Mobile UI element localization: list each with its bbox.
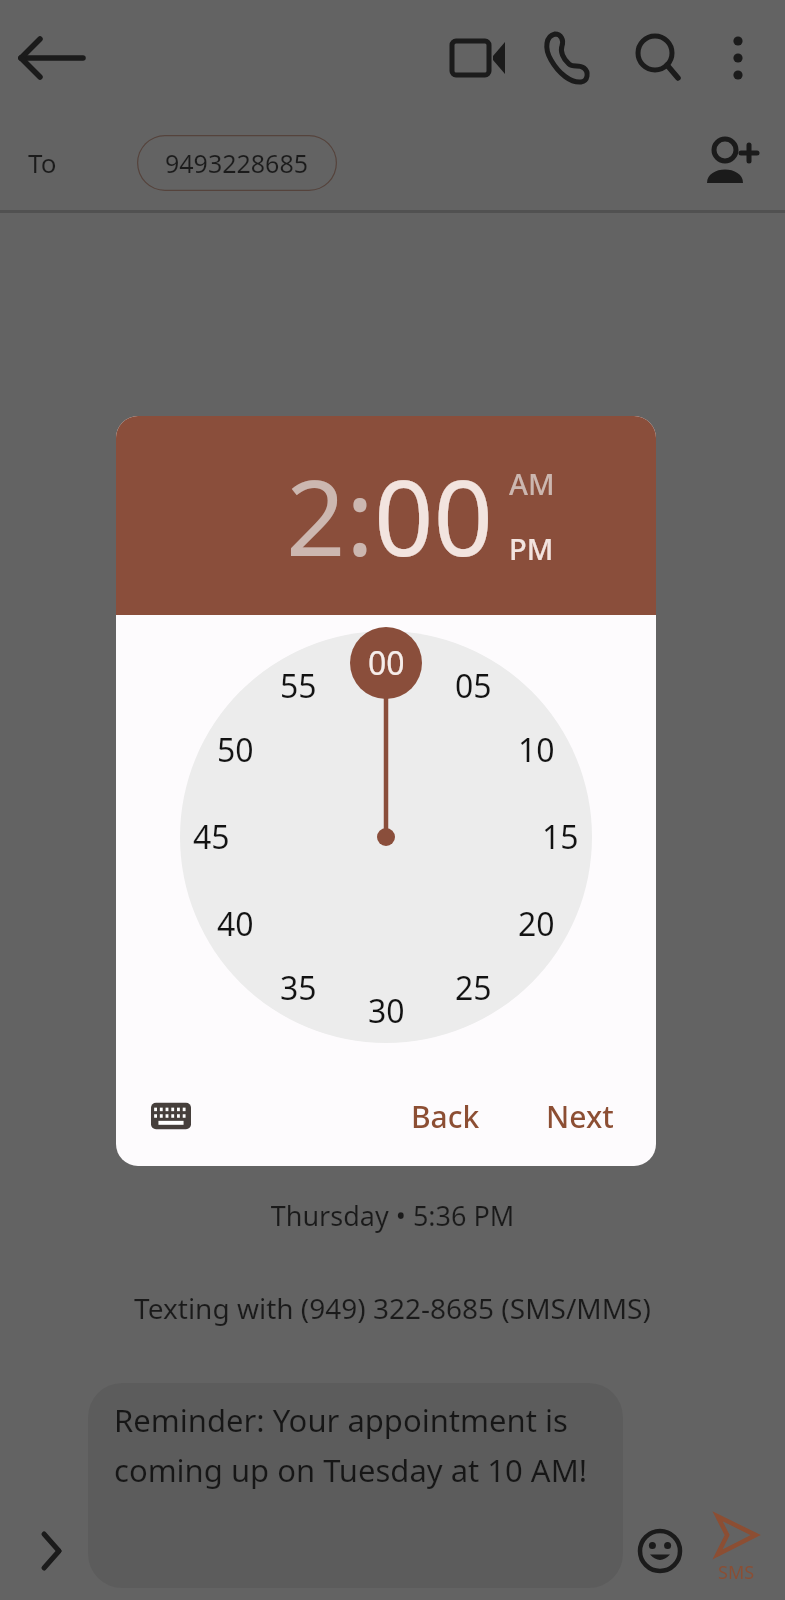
button[interactable]: AM <box>509 464 555 503</box>
staticText: 20 <box>518 902 555 946</box>
staticText: : <box>346 445 374 587</box>
staticText: 45 <box>193 815 230 859</box>
button[interactable]: PM <box>509 529 554 568</box>
staticText: 30 <box>368 989 405 1033</box>
staticText: 00 <box>374 445 493 587</box>
staticText: 9493228685 <box>165 146 309 180</box>
button[interactable]: 45 <box>193 815 230 859</box>
staticText: 10 <box>518 728 555 772</box>
button[interactable]: Back <box>20 26 84 90</box>
staticText: 40 <box>217 902 254 946</box>
button[interactable]: Next <box>530 1086 630 1147</box>
staticText: 05 <box>455 664 492 708</box>
button[interactable]: Video call <box>447 27 509 89</box>
staticText: Texting with (949) 322-8685 (SMS/MMS) <box>0 1289 785 1327</box>
staticText: Reminder: Your appointment is coming up … <box>114 1399 599 1491</box>
button[interactable]: Reminder: Your appointment is coming up … <box>88 1383 623 1588</box>
button[interactable]: 20 <box>518 902 555 946</box>
button[interactable]: 50 <box>217 728 254 772</box>
button[interactable]: 25 <box>455 966 492 1010</box>
staticText: 25 <box>455 966 492 1010</box>
button[interactable]: 35 <box>280 966 317 1010</box>
staticText: 35 <box>280 966 317 1010</box>
button[interactable]: 2 <box>286 445 346 587</box>
staticText: PM <box>509 529 554 568</box>
staticText: 00 <box>368 641 405 685</box>
staticText: Next <box>546 1096 614 1137</box>
button[interactable]: 30 <box>368 989 405 1033</box>
button[interactable]: Call <box>537 27 599 89</box>
staticText: 2 <box>286 445 346 587</box>
staticText: Back <box>411 1096 480 1137</box>
button[interactable]: 00 <box>374 445 493 587</box>
staticText: SMS <box>718 1560 755 1585</box>
button[interactable]: 9493228685 <box>137 135 337 191</box>
button[interactable]: Back <box>395 1086 496 1147</box>
staticText: Thursday • 5:36 PM <box>0 1197 785 1234</box>
button[interactable]: 10 <box>518 728 555 772</box>
button[interactable]: 55 <box>280 664 317 708</box>
button[interactable]: Expand <box>14 1514 88 1588</box>
button[interactable]: Search <box>627 27 689 89</box>
button[interactable]: Send SMS <box>697 1510 775 1588</box>
button[interactable]: 40 <box>217 902 254 946</box>
staticText: 50 <box>217 728 254 772</box>
button[interactable]: 15 <box>542 815 579 859</box>
button[interactable]: 00 <box>368 641 405 685</box>
button[interactable]: 05 <box>455 664 492 708</box>
staticText: 15 <box>542 815 579 859</box>
staticText: To <box>28 145 57 180</box>
button[interactable]: More options <box>707 27 769 89</box>
button[interactable]: Add people <box>701 133 761 193</box>
staticText: AM <box>509 464 555 503</box>
button[interactable]: Switch to text input <box>142 1087 200 1145</box>
staticText: 55 <box>280 664 317 708</box>
button[interactable]: Emoji <box>623 1514 697 1588</box>
